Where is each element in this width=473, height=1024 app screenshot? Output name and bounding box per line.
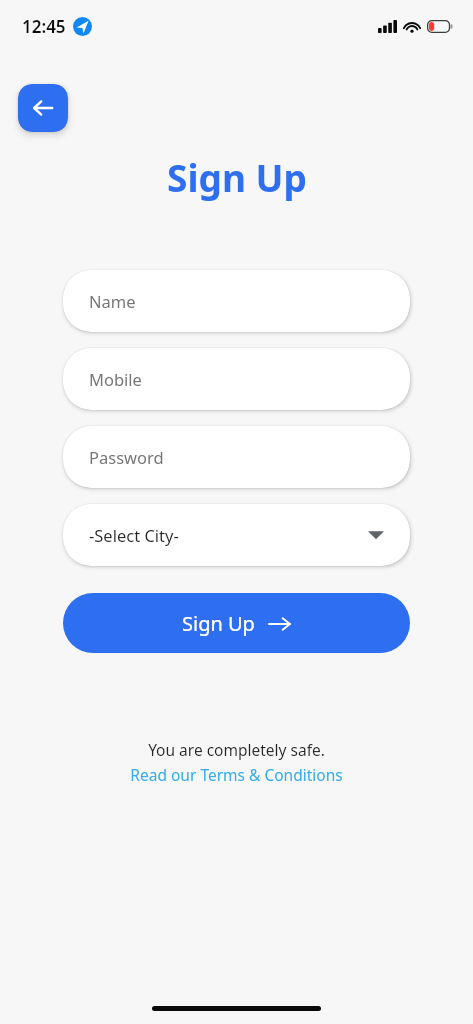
staticText: Sign Up xyxy=(167,152,307,202)
button[interactable]: Back xyxy=(18,84,68,132)
staticText: Password xyxy=(89,446,164,468)
staticText: 12:45 xyxy=(22,15,66,38)
staticText: Read our Terms & Conditions xyxy=(130,764,343,785)
button[interactable]: Mobile xyxy=(63,348,410,410)
staticText: -Select City- xyxy=(89,524,179,546)
button[interactable]: Password xyxy=(63,426,410,488)
button[interactable]: -Select City- xyxy=(63,504,410,566)
staticText: Name xyxy=(89,290,136,312)
button[interactable]: Read our Terms & Conditions xyxy=(130,764,343,785)
staticText: You are completely safe. xyxy=(148,739,325,760)
button[interactable]: Sign Up xyxy=(63,593,410,653)
staticText: Sign Up xyxy=(182,610,255,637)
button[interactable]: Name xyxy=(63,270,410,332)
staticText: Mobile xyxy=(89,368,142,390)
